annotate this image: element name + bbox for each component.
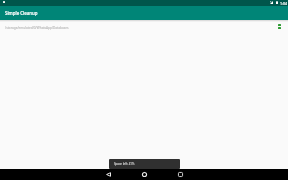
button[interactable]: Recents	[175, 169, 185, 179]
button[interactable]: Back	[103, 169, 113, 179]
button[interactable]: Storage	[275, 22, 284, 31]
button[interactable]: Home	[139, 169, 149, 179]
button[interactable]: Space left: 41%	[109, 159, 180, 169]
staticText: Simple Cleanup	[5, 10, 38, 16]
staticText: /storage/emulated/0/WhatsApp/Databases	[5, 26, 69, 30]
staticText: 1:04	[280, 1, 287, 6]
staticText: Space left: 41%	[114, 162, 135, 166]
